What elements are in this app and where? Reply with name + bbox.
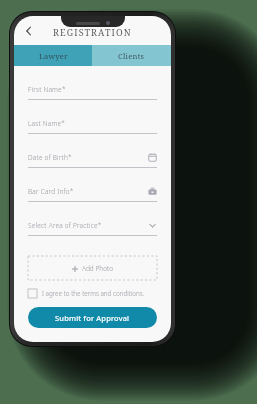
staticText: First Name* (28, 85, 66, 94)
button[interactable]: Clients (92, 45, 171, 66)
staticText: Add Photo (82, 264, 114, 273)
staticText: Submit for Approval (55, 313, 130, 323)
staticText: I agree to the terms and conditions. (42, 289, 145, 298)
button[interactable]: Bar Card Info* (28, 181, 157, 215)
button[interactable]: Back (18, 20, 40, 42)
staticText: Clients (118, 51, 145, 61)
staticText: Bar Card Info* (28, 187, 74, 196)
button[interactable]: I agree to the terms and conditions. (28, 289, 157, 298)
staticText: Last Name* (28, 119, 65, 128)
button[interactable]: First Name* (28, 79, 157, 113)
button[interactable]: Lawyer (14, 45, 92, 66)
button[interactable]: Submit for Approval (28, 307, 157, 328)
button[interactable]: Add Photo (28, 256, 157, 280)
staticText: Lawyer (39, 51, 68, 61)
staticText: Date of Birth* (28, 153, 72, 162)
button[interactable]: Last Name* (28, 113, 157, 147)
staticText: Select Area of Practice* (28, 221, 102, 230)
staticText: REGISTRATION (53, 26, 132, 38)
button[interactable]: Date of Birth* (28, 147, 157, 181)
button[interactable]: Select Area of Practice* (28, 215, 157, 249)
